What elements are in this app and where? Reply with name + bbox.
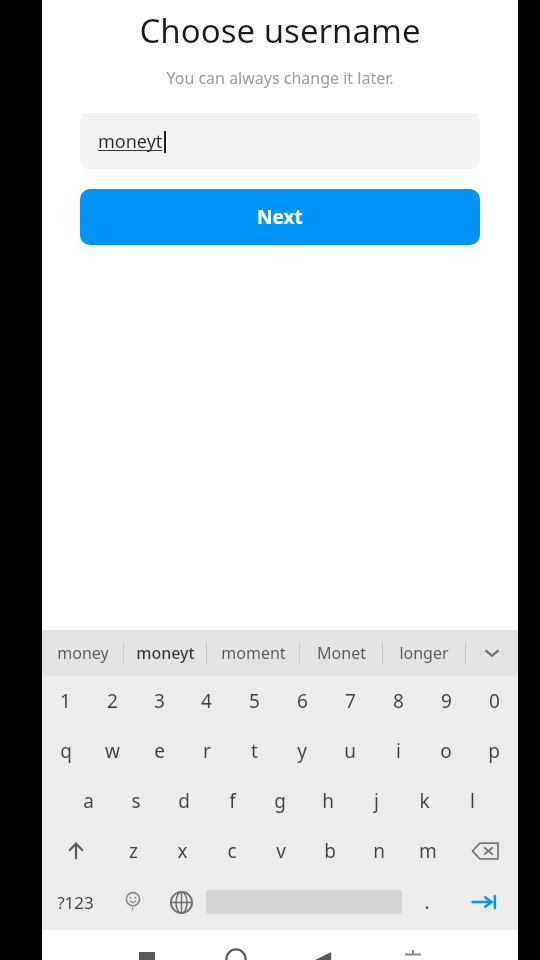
button[interactable]: n: [354, 826, 403, 876]
button[interactable]: moment: [207, 630, 299, 676]
button[interactable]: Recent apps: [398, 930, 428, 960]
button[interactable]: 2: [89, 676, 136, 726]
button[interactable]: c: [207, 826, 256, 876]
button[interactable]: l: [448, 776, 496, 826]
button[interactable]: p: [470, 726, 518, 776]
button[interactable]: moneyt: [80, 113, 480, 169]
button[interactable]: v: [256, 826, 305, 876]
staticText: m: [419, 838, 437, 864]
staticText: 9: [441, 688, 452, 714]
staticText: v: [276, 838, 286, 864]
button[interactable]: o: [422, 726, 470, 776]
button[interactable]: t: [230, 726, 278, 776]
button[interactable]: longer: [383, 630, 465, 676]
staticText: .: [424, 889, 430, 915]
staticText: 2: [107, 688, 118, 714]
button[interactable]: 9: [422, 676, 470, 726]
staticText: j: [374, 788, 379, 814]
staticText: l: [470, 788, 475, 814]
button[interactable]: Backspace: [452, 826, 518, 876]
button[interactable]: Expand suggestions: [466, 630, 518, 676]
button[interactable]: 6: [278, 676, 326, 726]
button[interactable]: Next field: [451, 876, 518, 928]
button[interactable]: m: [403, 826, 452, 876]
staticText: p: [488, 738, 500, 764]
staticText: h: [322, 788, 334, 814]
button[interactable]: Back: [309, 930, 339, 960]
button[interactable]: q: [42, 726, 89, 776]
button[interactable]: 3: [136, 676, 183, 726]
button[interactable]: s: [112, 776, 160, 826]
staticText: z: [129, 838, 138, 864]
staticText: q: [60, 738, 72, 764]
staticText: longer: [399, 642, 449, 664]
staticText: moneyt: [98, 129, 163, 154]
button[interactable]: g: [256, 776, 304, 826]
staticText: money: [57, 642, 109, 664]
staticText: k: [419, 788, 430, 814]
button[interactable]: Shift: [42, 826, 109, 876]
button[interactable]: d: [160, 776, 208, 826]
button[interactable]: f: [208, 776, 256, 826]
staticText: moneyt: [136, 642, 195, 664]
staticText: 7: [345, 688, 356, 714]
staticText: f: [229, 788, 236, 814]
button[interactable]: b: [305, 826, 354, 876]
button[interactable]: h: [304, 776, 352, 826]
staticText: o: [440, 738, 452, 764]
button[interactable]: ?123: [42, 876, 108, 928]
button[interactable]: 4: [183, 676, 230, 726]
button[interactable]: money: [42, 630, 123, 676]
button[interactable]: .: [402, 876, 451, 928]
staticText: moment: [221, 642, 286, 664]
staticText: 8: [393, 688, 404, 714]
button[interactable]: u: [326, 726, 374, 776]
staticText: s: [131, 788, 141, 814]
button[interactable]: r: [183, 726, 230, 776]
staticText: 3: [154, 688, 165, 714]
staticText: e: [154, 738, 165, 764]
staticText: u: [344, 738, 356, 764]
staticText: 1: [60, 688, 71, 714]
button[interactable]: Change keyboard language: [157, 876, 206, 928]
staticText: y: [297, 738, 307, 764]
staticText: 0: [489, 688, 500, 714]
button[interactable]: 8: [374, 676, 422, 726]
button[interactable]: 5: [230, 676, 278, 726]
button[interactable]: a: [64, 776, 112, 826]
button[interactable]: x: [158, 826, 207, 876]
button[interactable]: i: [374, 726, 422, 776]
button[interactable]: z: [109, 826, 158, 876]
staticText: b: [324, 838, 336, 864]
button[interactable]: j: [352, 776, 400, 826]
staticText: 4: [201, 688, 212, 714]
button[interactable]: k: [400, 776, 448, 826]
staticText: a: [83, 788, 94, 814]
staticText: d: [178, 788, 190, 814]
button[interactable]: w: [89, 726, 136, 776]
button[interactable]: moneyt: [124, 630, 206, 676]
staticText: n: [373, 838, 385, 864]
staticText: w: [105, 738, 120, 764]
staticText: i: [396, 738, 401, 764]
button[interactable]: Home: [221, 930, 251, 960]
button[interactable]: e: [136, 726, 183, 776]
button[interactable]: Hide keyboard: [132, 930, 162, 960]
staticText: 6: [297, 688, 308, 714]
staticText: r: [203, 738, 211, 764]
staticText: You can always change it later.: [42, 67, 518, 89]
staticText: g: [274, 788, 286, 814]
button[interactable]: y: [278, 726, 326, 776]
button[interactable]: 7: [326, 676, 374, 726]
button[interactable]: 0: [470, 676, 518, 726]
button[interactable]: Monet: [300, 630, 382, 676]
button[interactable]: Emoji and comma: [108, 876, 157, 928]
staticText: Choose username: [42, 8, 518, 53]
staticText: Monet: [317, 642, 366, 664]
staticText: ?123: [57, 891, 94, 914]
button[interactable]: 1: [42, 676, 89, 726]
staticText: t: [251, 738, 258, 764]
staticText: 5: [249, 688, 260, 714]
button[interactable]: Next: [80, 189, 480, 245]
